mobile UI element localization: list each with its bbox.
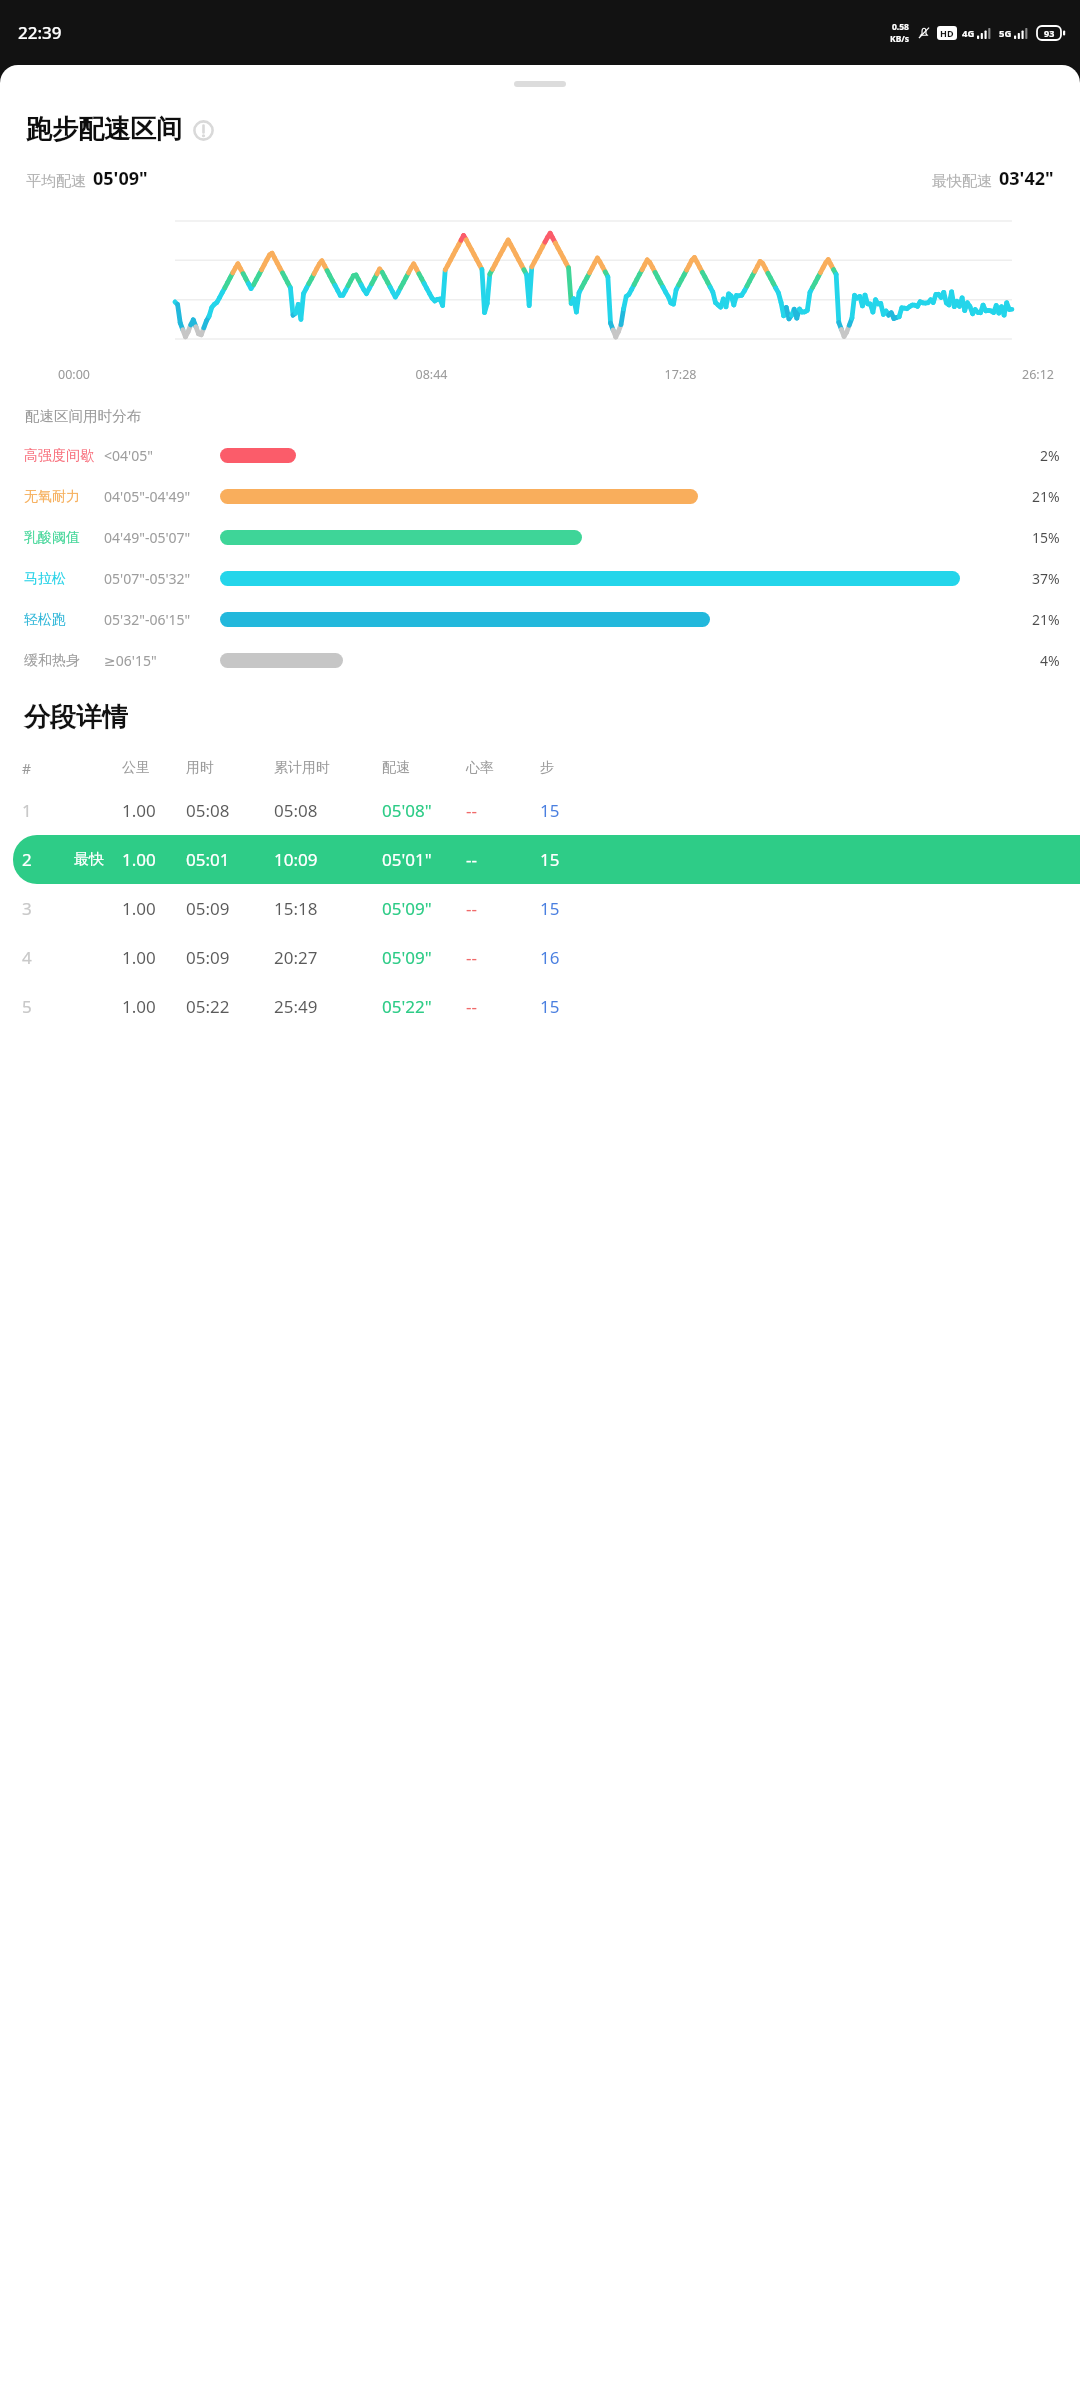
staticText: 1.00 (122, 848, 156, 871)
button[interactable]: 5 (13, 982, 1080, 1031)
staticText: 配速区间用时分布 (25, 407, 141, 425)
staticText: 01:16 (220, 651, 256, 670)
staticText: 跑步配速区间 (26, 113, 182, 146)
staticText: 轻松跑 (24, 611, 66, 629)
staticText: 累计用时 (274, 759, 330, 777)
staticText: 05'07"-05'32" (104, 569, 191, 588)
staticText: 17:28 (556, 366, 805, 383)
staticText: 无氧耐力 (24, 488, 80, 506)
staticText: 用时 (186, 759, 214, 777)
staticText: 15:18 (274, 897, 318, 920)
staticText: 05'01" (382, 848, 432, 871)
staticText: 37% (1032, 569, 1060, 588)
staticText: 15% (1032, 528, 1060, 547)
staticText: 05'09" (93, 166, 148, 191)
staticText: <04'05" (104, 446, 153, 465)
staticText: 16 (540, 946, 560, 969)
staticText: -- (466, 946, 477, 969)
staticText: 平均配速 (26, 172, 86, 191)
staticText: 4 (22, 946, 32, 969)
staticText: 1.00 (122, 995, 156, 1018)
staticText: 1 (22, 799, 32, 822)
staticText: 04'49"-05'07" (104, 528, 191, 547)
staticText: 10:09 (274, 848, 318, 871)
button[interactable]: 2 (13, 835, 1080, 884)
staticText: 05:08 (186, 799, 230, 822)
staticText: 1.00 (122, 946, 156, 969)
staticText: 最快配速 (932, 172, 992, 191)
staticText: 05'32"-06'15" (104, 610, 191, 629)
staticText: 2% (1040, 446, 1060, 465)
staticText: 05'09" (382, 946, 432, 969)
staticText: 步 (540, 759, 554, 777)
button[interactable]: Info (190, 117, 216, 143)
staticText: 04'05"-04'49" (104, 487, 191, 506)
staticText: 20:27 (274, 946, 318, 969)
button[interactable]: 无氧耐力 (24, 476, 1060, 517)
staticText: 0.58 (892, 21, 909, 33)
staticText: 心率 (466, 759, 494, 777)
staticText: 3 (22, 897, 32, 920)
staticText: 1.00 (122, 799, 156, 822)
staticText: 04:00 (220, 528, 256, 547)
button[interactable]: 轻松跑 (24, 599, 1060, 640)
staticText: 00:00 (58, 366, 307, 383)
staticText: 4G (962, 27, 975, 40)
staticText: 15 (540, 995, 560, 1018)
staticText: 22:39 (18, 21, 62, 44)
staticText: 05:01 (186, 848, 230, 871)
button[interactable]: 4 (13, 933, 1080, 982)
staticText: 5 (22, 995, 32, 1018)
staticText: 15 (540, 799, 560, 822)
staticText: 08:44 (307, 366, 556, 383)
staticText: 15 (540, 897, 560, 920)
staticText: 缓和热身 (24, 652, 80, 670)
staticText: 乳酸阈值 (24, 529, 80, 547)
staticText: 05:22 (186, 995, 230, 1018)
staticText: 1.00 (122, 897, 156, 920)
staticText: -- (466, 995, 477, 1018)
staticText: 2 (22, 848, 32, 871)
staticText: 公里 (122, 759, 150, 777)
staticText: 最快 (74, 850, 104, 869)
staticText: 05:33 (220, 487, 256, 506)
staticText: KB/s (890, 33, 910, 45)
staticText: 05:09 (186, 946, 230, 969)
staticText: 00:45 (220, 446, 256, 465)
button[interactable]: 缓和热身 (24, 640, 1060, 681)
staticText: 21% (1032, 610, 1060, 629)
button[interactable]: 1 (13, 786, 1080, 835)
staticText: 配速 (382, 759, 410, 777)
staticText: 05'08" (382, 799, 432, 822)
staticText: 15 (540, 848, 560, 871)
staticText: # (22, 759, 32, 778)
staticText: 25:49 (274, 995, 318, 1018)
staticText: 21% (1032, 487, 1060, 506)
staticText: 4% (1040, 651, 1060, 670)
button[interactable]: 3 (13, 884, 1080, 933)
staticText: 26:12 (805, 366, 1054, 383)
staticText: -- (466, 848, 477, 871)
button[interactable]: 乳酸阈值 (24, 517, 1060, 558)
staticText: 93 (1044, 27, 1055, 39)
staticText: 05:42 (220, 610, 256, 629)
staticText: 05:09 (186, 897, 230, 920)
staticText: 05:08 (274, 799, 318, 822)
staticText: 马拉松 (24, 570, 66, 588)
staticText: ≥06'15" (104, 651, 157, 670)
staticText: HD (940, 27, 954, 39)
button[interactable]: 高强度间歇 (24, 435, 1060, 476)
button[interactable]: 马拉松 (24, 558, 1060, 599)
staticText: -- (466, 897, 477, 920)
staticText: 5G (999, 27, 1012, 40)
staticText: 05'22" (382, 995, 432, 1018)
staticText: 高强度间歇 (24, 447, 94, 465)
staticText: 分段详情 (24, 701, 128, 734)
staticText: -- (466, 799, 477, 822)
staticText: 05'09" (382, 897, 432, 920)
staticText: 08:55 (220, 569, 256, 588)
staticText: 03'42" (999, 166, 1054, 191)
